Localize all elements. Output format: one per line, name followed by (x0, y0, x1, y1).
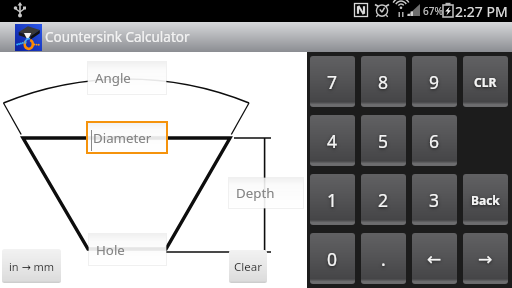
staticText: Hole (96, 241, 125, 259)
staticText: 6 (429, 129, 440, 153)
button[interactable]: → (463, 233, 508, 284)
button[interactable]: ← (412, 233, 457, 284)
staticText: Countersink Calculator (45, 28, 190, 46)
button[interactable]: 8 (361, 56, 406, 107)
staticText: 0 (327, 247, 338, 271)
staticText: 5 (378, 129, 389, 153)
staticText: 2:27 PM (455, 2, 508, 21)
staticText: in → mm (9, 259, 55, 274)
staticText: 9 (429, 70, 440, 94)
button[interactable]: Clear (229, 250, 267, 283)
button[interactable]: Angle (87, 61, 167, 95)
staticText: 67% (423, 4, 443, 18)
staticText: Back (471, 192, 500, 208)
button[interactable]: 5 (361, 115, 406, 166)
staticText: 4 (327, 129, 338, 153)
staticText: Angle (95, 69, 131, 87)
button[interactable]: Diameter (86, 121, 168, 154)
staticText: 2 (378, 188, 389, 212)
button[interactable]: 1 (310, 174, 355, 225)
button[interactable]: 4 (310, 115, 355, 166)
staticText: 7 (327, 70, 338, 94)
button[interactable]: 3 (412, 174, 457, 225)
button[interactable]: 0 (310, 233, 355, 284)
staticText: 1 (327, 188, 338, 212)
staticText: CLR (474, 74, 497, 90)
button[interactable]: Back (463, 174, 508, 225)
button[interactable]: Hole (88, 233, 167, 266)
button[interactable]: Depth (228, 177, 304, 209)
button[interactable]: 7 (310, 56, 355, 107)
button[interactable]: 9 (412, 56, 457, 107)
staticText: Diameter (93, 129, 152, 147)
button[interactable]: CLR (463, 56, 508, 107)
staticText: 8 (378, 70, 389, 94)
button[interactable]: 2 (361, 174, 406, 225)
staticText: 3 (429, 188, 440, 212)
staticText: . (381, 247, 386, 271)
button[interactable]: . (361, 233, 406, 284)
staticText: Clear (234, 259, 262, 275)
staticText: Depth (236, 184, 275, 202)
button[interactable]: in → mm (2, 249, 61, 283)
staticText: → (478, 249, 493, 269)
staticText: ← (427, 249, 442, 269)
button[interactable]: 6 (412, 115, 457, 166)
